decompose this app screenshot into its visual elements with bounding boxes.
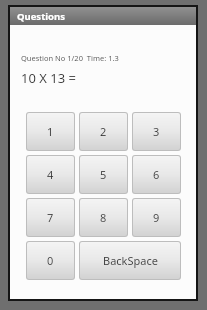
- button[interactable]: 6: [133, 156, 180, 193]
- button[interactable]: 1: [27, 113, 74, 150]
- button[interactable]: 7: [27, 199, 74, 236]
- staticText: 1: [47, 124, 54, 139]
- button[interactable]: 4: [27, 156, 74, 193]
- button[interactable]: 5: [80, 156, 127, 193]
- staticText: Questions: [17, 10, 65, 23]
- button[interactable]: 9: [133, 199, 180, 236]
- staticText: 4: [47, 167, 54, 182]
- staticText: 10 X 13 =: [21, 69, 76, 87]
- staticText: 2: [100, 124, 107, 139]
- staticText: 3: [153, 124, 160, 139]
- staticText: 7: [47, 210, 54, 225]
- staticText: Question No 1/20 Time: 1.3: [21, 53, 119, 63]
- staticText: 8: [100, 210, 107, 225]
- button[interactable]: 3: [133, 113, 180, 150]
- staticText: 9: [153, 210, 160, 225]
- staticText: BackSpace: [103, 253, 158, 268]
- button[interactable]: 0: [27, 242, 74, 279]
- staticText: 6: [153, 167, 160, 182]
- staticText: 5: [100, 167, 107, 182]
- button[interactable]: 8: [80, 199, 127, 236]
- button[interactable]: 2: [80, 113, 127, 150]
- button[interactable]: BackSpace: [80, 242, 180, 279]
- staticText: 0: [47, 253, 54, 268]
